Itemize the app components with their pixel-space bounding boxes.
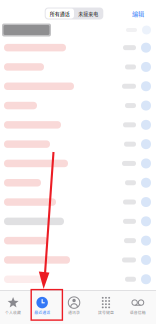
button[interactable]: 未接来电	[74, 8, 102, 18]
button[interactable]	[0, 270, 156, 289]
button[interactable]	[0, 212, 156, 231]
staticText: 最近通话	[34, 310, 50, 315]
button[interactable]: 最近通话	[26, 290, 58, 321]
staticText: 未接来电	[78, 10, 98, 17]
button[interactable]	[0, 154, 156, 173]
button[interactable]: 编辑	[131, 8, 156, 18]
staticText: 拨号键盘	[98, 310, 114, 315]
button[interactable]: 通讯录	[58, 290, 90, 321]
staticText: 个人收藏	[5, 310, 21, 315]
button[interactable]	[0, 115, 156, 134]
button[interactable]	[0, 57, 156, 77]
button[interactable]	[0, 231, 156, 250]
button[interactable]: 拨号键盘	[90, 290, 122, 321]
button[interactable]: 所有通话	[46, 8, 74, 18]
button[interactable]	[0, 134, 156, 154]
button[interactable]	[0, 77, 156, 96]
button[interactable]	[0, 96, 156, 115]
staticText: 编辑	[132, 9, 144, 18]
button[interactable]: 个人收藏	[0, 290, 26, 321]
staticText: 语音信箱	[130, 310, 146, 315]
button[interactable]: 语音信箱	[122, 290, 154, 321]
staticText: 所有通话	[50, 10, 70, 17]
button[interactable]	[0, 38, 156, 57]
button[interactable]	[0, 192, 156, 212]
staticText: 通讯录	[68, 310, 80, 315]
button[interactable]	[0, 173, 156, 192]
button[interactable]	[0, 250, 156, 270]
button[interactable]	[0, 22, 156, 38]
